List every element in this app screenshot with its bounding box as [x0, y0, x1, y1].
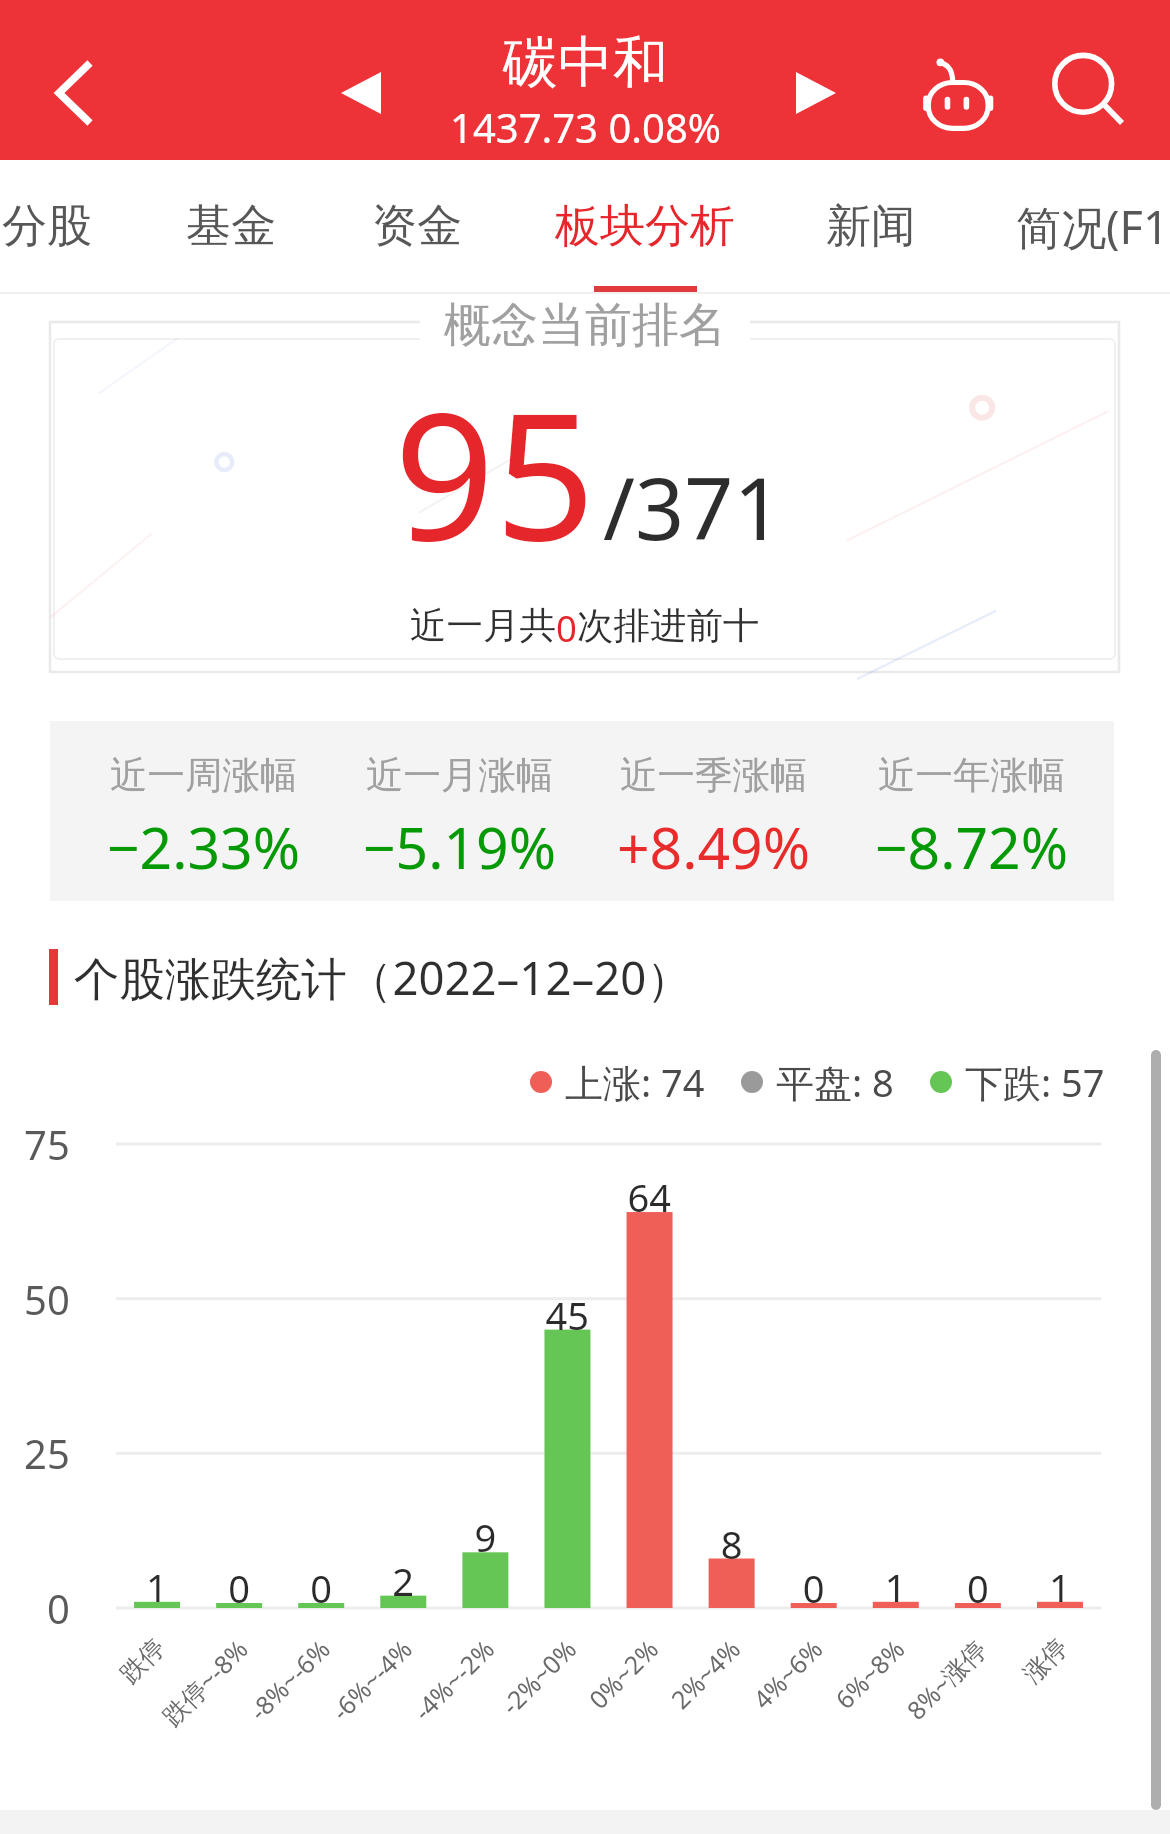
button[interactable]: AI assistant — [888, 26, 1028, 160]
button[interactable]: 资金 — [351, 160, 483, 292]
button[interactable]: 板块分析 — [533, 160, 757, 292]
staticText: 资金 — [372, 198, 462, 255]
button[interactable]: 细分股 — [0, 160, 113, 292]
staticText: 0 — [556, 603, 577, 653]
staticText: 板块分析 — [555, 198, 735, 255]
staticText: 基金 — [186, 198, 276, 255]
staticText: 次排进前十 — [577, 603, 760, 649]
button[interactable]: 简况(F10) — [931, 160, 1170, 292]
staticText: 概念当前排名 — [444, 296, 726, 355]
staticText: 个股涨跌统计（2022–12–20） — [74, 946, 692, 1008]
button[interactable]: Previous sector — [300, 26, 422, 160]
staticText: +8.49% — [617, 808, 811, 886]
staticText: /371 — [603, 448, 783, 565]
button[interactable]: Next sector — [755, 26, 877, 160]
staticText: 近一年涨幅 — [878, 752, 1066, 799]
staticText: 碳中和 — [503, 28, 668, 97]
staticText: 细分股 — [0, 198, 92, 255]
button[interactable]: Back — [14, 26, 134, 160]
staticText: −8.72% — [875, 808, 1069, 886]
staticText: 近一周涨幅 — [110, 752, 298, 799]
staticText: 95 — [394, 352, 596, 592]
button[interactable]: Search — [1020, 26, 1160, 160]
staticText: 近一季涨幅 — [620, 752, 808, 799]
staticText: −2.33% — [107, 808, 301, 886]
staticText: 简况(F10) — [1016, 196, 1170, 257]
staticText: 1437.73 0.08% — [450, 100, 721, 154]
button[interactable]: 基金 — [165, 160, 297, 292]
staticText: 近一月共 — [410, 603, 556, 649]
staticText: −5.19% — [363, 808, 557, 886]
button[interactable]: 新闻 — [805, 160, 937, 292]
staticText: 新闻 — [826, 198, 916, 255]
staticText: 近一月涨幅 — [366, 752, 554, 799]
